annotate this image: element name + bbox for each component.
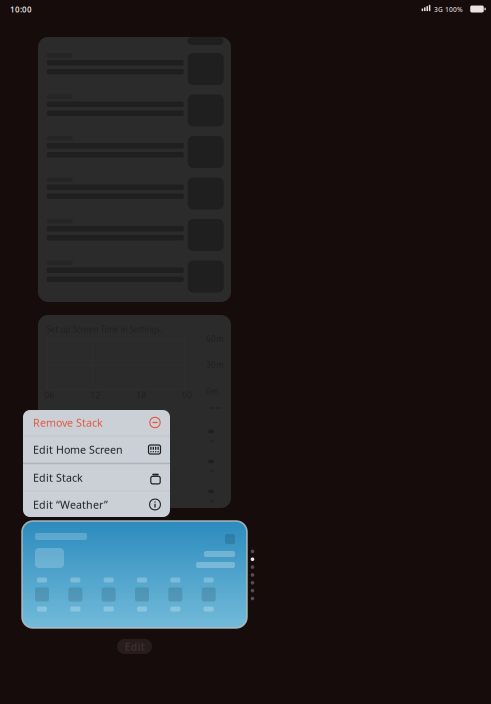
button[interactable]: Remove Stack (23, 409, 170, 436)
button[interactable]: Edit (117, 639, 152, 654)
staticText: 30m (206, 360, 223, 370)
staticText: Edit Stack (33, 470, 83, 485)
staticText: 10:00 (10, 4, 32, 15)
staticText: 60m (206, 334, 223, 344)
staticText: 0m (206, 386, 218, 397)
staticText: 12 (90, 390, 100, 401)
staticText: 00 (182, 390, 192, 401)
staticText: Edit Home Screen (33, 442, 123, 457)
button[interactable]: Edit “Weather” (23, 491, 170, 518)
staticText: 18 (136, 390, 146, 401)
staticText: 3G 100% (434, 5, 463, 14)
staticText: Edit (124, 639, 144, 654)
staticText: Set up Screen Time in Settings. (46, 324, 162, 335)
staticText: Remove Stack (33, 415, 103, 430)
staticText: 06 (44, 390, 54, 401)
button[interactable]: Edit Stack (23, 464, 170, 491)
staticText: Edit “Weather” (33, 497, 108, 512)
button[interactable]: Edit Home Screen (23, 436, 170, 463)
